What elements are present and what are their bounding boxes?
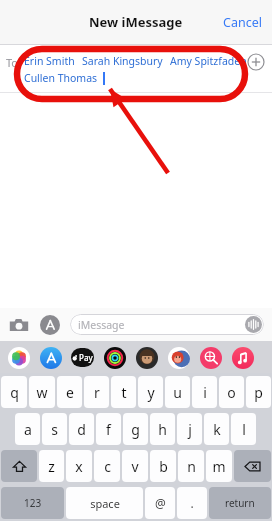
- button[interactable]: l: [231, 413, 256, 445]
- button[interactable]: space: [66, 487, 143, 519]
- button[interactable]: k: [204, 413, 229, 445]
- button[interactable]: y: [138, 376, 163, 408]
- staticText: Amy Spitzfaden: [170, 54, 247, 68]
- staticText: m: [212, 457, 226, 476]
- staticText: t: [121, 383, 127, 402]
- staticText: To:: [6, 55, 21, 70]
- button[interactable]: Animoji: [167, 346, 190, 369]
- staticText: return: [225, 496, 255, 510]
- staticText: .: [190, 495, 194, 511]
- button[interactable]: iMessage: [70, 314, 264, 335]
- button[interactable]: v: [122, 450, 148, 482]
- staticText: Erin Smith: [24, 54, 75, 68]
- button[interactable]: Fitness: [103, 346, 126, 369]
- button[interactable]: .: [177, 487, 207, 519]
- button[interactable]: Backspace: [234, 450, 271, 482]
- staticText: q: [10, 383, 19, 402]
- button[interactable]: t: [111, 376, 136, 408]
- button[interactable]: p: [246, 376, 271, 408]
- button[interactable]: c: [94, 450, 120, 482]
- button[interactable]: Memoji: [135, 346, 158, 369]
- staticText: v: [131, 457, 139, 476]
- button[interactable]: u: [165, 376, 190, 408]
- button[interactable]: x: [66, 450, 92, 482]
- staticText: e: [66, 383, 74, 402]
- staticText: z: [48, 457, 55, 476]
- button[interactable]: App Store: [39, 346, 62, 369]
- button[interactable]: Music: [231, 346, 254, 369]
- staticText: New iMessage: [89, 13, 183, 31]
- button[interactable]: a: [15, 413, 40, 445]
- button[interactable]: Apps: [39, 314, 61, 336]
- button[interactable]: Apple Pay: [71, 346, 94, 369]
- staticText: a: [24, 420, 32, 439]
- staticText: iMessage: [78, 318, 125, 332]
- staticText: space: [90, 496, 120, 511]
- staticText: Cullen Thomas: [24, 71, 98, 85]
- staticText: w: [36, 383, 48, 402]
- staticText: j: [188, 420, 192, 439]
- button[interactable]: Add contact: [247, 53, 265, 71]
- staticText: y: [147, 383, 155, 402]
- button[interactable]: 123: [1, 487, 64, 519]
- staticText: x: [75, 457, 83, 476]
- button[interactable]: e: [57, 376, 82, 408]
- staticText: 123: [24, 496, 42, 510]
- button[interactable]: @: [145, 487, 175, 519]
- button[interactable]: return: [209, 487, 271, 519]
- staticText: Cancel: [223, 14, 262, 31]
- button[interactable]: Audio message: [245, 316, 262, 333]
- button[interactable]: d: [69, 413, 94, 445]
- staticText: @: [155, 495, 166, 511]
- button[interactable]: Images: [199, 346, 222, 369]
- staticText: Sarah Kingsbury: [82, 54, 163, 68]
- button[interactable]: n: [178, 450, 204, 482]
- button[interactable]: Camera: [8, 314, 30, 336]
- button[interactable]: Cancel: [219, 8, 266, 37]
- button[interactable]: r: [84, 376, 109, 408]
- staticText: n: [187, 457, 196, 476]
- button[interactable]: j: [177, 413, 202, 445]
- button[interactable]: h: [150, 413, 175, 445]
- staticText: s: [51, 420, 58, 439]
- button[interactable]: z: [39, 450, 64, 482]
- staticText: f: [106, 420, 111, 439]
- button[interactable]: q: [1, 376, 27, 408]
- staticText: c: [104, 457, 111, 476]
- button[interactable]: g: [123, 413, 148, 445]
- staticText: k: [213, 420, 221, 439]
- button[interactable]: m: [206, 450, 232, 482]
- button[interactable]: b: [150, 450, 176, 482]
- button[interactable]: To:: [0, 45, 272, 92]
- button[interactable]: Shift: [1, 450, 37, 482]
- button[interactable]: i: [192, 376, 217, 408]
- staticText: l: [242, 420, 246, 439]
- staticText: g: [131, 420, 140, 439]
- staticText: r: [94, 383, 100, 402]
- button[interactable]: w: [29, 376, 55, 408]
- staticText: b: [159, 457, 168, 476]
- staticText: h: [158, 420, 167, 439]
- button[interactable]: s: [42, 413, 67, 445]
- button[interactable]: o: [219, 376, 244, 408]
- staticText: d: [77, 420, 86, 439]
- staticText: p: [254, 383, 263, 402]
- staticText: i: [203, 383, 207, 402]
- staticText: o: [227, 383, 236, 402]
- button[interactable]: Photos: [7, 346, 30, 369]
- button[interactable]: f: [96, 413, 121, 445]
- staticText: Pay: [79, 352, 93, 363]
- staticText: u: [173, 383, 182, 402]
